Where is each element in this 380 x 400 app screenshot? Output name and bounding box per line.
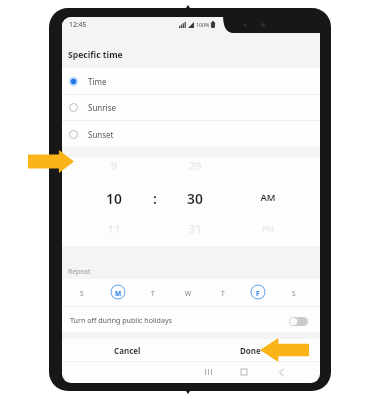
button[interactable]: F <box>249 283 267 301</box>
staticText: AM <box>253 191 283 204</box>
staticText: 30 <box>180 189 210 205</box>
staticText: 12:45 <box>69 20 87 29</box>
staticText: W <box>185 289 192 298</box>
button[interactable]: S <box>73 283 91 301</box>
button[interactable]: Time <box>62 68 320 95</box>
button[interactable]: Sunrise <box>62 94 320 121</box>
staticText: 100% <box>196 21 210 28</box>
button[interactable]: Sunset <box>62 121 320 148</box>
staticText: 9 <box>99 158 129 174</box>
button[interactable]: M <box>109 283 127 301</box>
staticText: S <box>292 289 296 298</box>
staticText: Specific time <box>68 49 123 61</box>
staticText: 10 <box>99 189 129 205</box>
staticText: 11 <box>99 221 129 237</box>
staticText: Cancel <box>114 345 141 356</box>
staticText: M <box>115 289 122 298</box>
button[interactable]: Turn off during public holidays <box>62 307 320 332</box>
staticText: 31 <box>180 221 210 237</box>
button[interactable]: W <box>179 283 197 301</box>
staticText: : <box>145 189 165 205</box>
staticText: Sunrise <box>88 102 116 113</box>
staticText: 29 <box>180 158 210 174</box>
staticText: Time <box>88 76 107 87</box>
staticText: Repeat <box>68 267 91 276</box>
button[interactable]: Back <box>273 364 289 380</box>
button[interactable]: T <box>144 283 162 301</box>
staticText: Sunset <box>88 129 114 140</box>
staticText: F <box>256 289 260 298</box>
staticText: Done <box>240 345 261 356</box>
staticText: PM <box>253 223 283 234</box>
button[interactable]: Home <box>236 364 252 380</box>
staticText: S <box>80 289 84 298</box>
staticText: Turn off during public holidays <box>70 315 172 325</box>
button[interactable]: Cancel <box>62 339 192 362</box>
staticText: T <box>221 289 225 298</box>
button[interactable]: T <box>214 283 232 301</box>
button[interactable]: S <box>285 283 303 301</box>
button[interactable]: Done <box>192 339 320 362</box>
button[interactable]: Recents <box>200 364 216 380</box>
staticText: T <box>151 289 155 298</box>
